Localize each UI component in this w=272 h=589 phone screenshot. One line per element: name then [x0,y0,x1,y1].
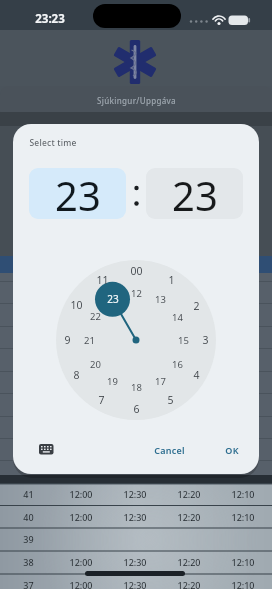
staticText: 12:00 [69,556,93,568]
staticText: 5 [167,393,174,407]
staticText: 12:10 [231,556,255,568]
staticText: 12:00 [69,579,93,589]
staticText: 12 [131,287,142,300]
button[interactable]: OK [212,440,252,460]
staticText: 17 [155,375,166,388]
staticText: 20 [90,358,101,371]
staticText: 23 [107,292,119,306]
button[interactable] [0,574,272,589]
button[interactable] [0,551,272,573]
staticText: 23 [172,168,218,219]
staticText: 00 [130,264,143,278]
button[interactable] [0,528,272,550]
staticText: 10 [70,298,83,312]
staticText: 19 [107,375,118,388]
staticText: Select time [29,137,77,149]
staticText: 12:30 [123,511,147,523]
staticText: 4 [193,368,200,382]
staticText: 3 [202,333,209,347]
staticText: 38 [23,556,34,568]
staticText: 41 [23,488,34,500]
staticText: 12:20 [177,511,201,523]
staticText: 12:30 [123,579,147,589]
button[interactable] [0,483,272,505]
staticText: 7 [98,393,105,407]
staticText: 12:10 [231,579,255,589]
button[interactable] [36,441,56,457]
staticText: 11 [96,273,109,287]
staticText: 12:10 [231,488,255,500]
button[interactable] [0,506,272,528]
staticText: 23:23 [35,11,65,27]
staticText: Sjúkingur/Uppgáva [97,95,176,106]
staticText: 12:10 [231,511,255,523]
staticText: 12:30 [123,488,147,500]
staticText: 22 [90,310,101,323]
staticText: 16 [172,358,183,371]
staticText: 12:20 [177,579,201,589]
staticText: 9 [64,333,71,347]
staticText: 13 [155,293,166,306]
staticText: 15 [178,334,189,347]
staticText: Cancel [154,444,185,456]
staticText: 40 [23,511,34,523]
staticText: 21 [84,334,95,347]
button[interactable]: Cancel [139,440,199,460]
staticText: 37 [23,579,34,589]
staticText: 39 [23,533,34,545]
staticText: 23 [55,168,101,219]
staticText: 12:00 [69,488,93,500]
staticText: 18 [131,381,142,394]
staticText: 14 [172,311,183,324]
staticText: OK [225,444,239,456]
staticText: 12:20 [177,556,201,568]
staticText: 1 [168,273,175,287]
staticText: 8 [73,368,80,382]
staticText: 12:00 [69,511,93,523]
button[interactable]: 23 [29,168,126,219]
staticText: 12:20 [177,488,201,500]
staticText: 6 [133,402,140,416]
staticText: 2 [193,299,200,313]
staticText: 12:30 [123,556,147,568]
button[interactable]: 23 [146,168,243,219]
